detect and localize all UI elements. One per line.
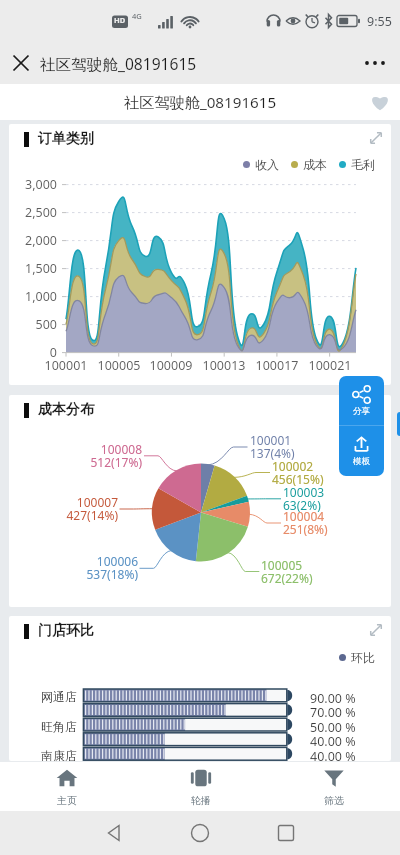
staticText: 门店环比: [38, 622, 94, 640]
staticText: 分享: [353, 406, 370, 417]
staticText: 成本: [303, 157, 327, 172]
button[interactable]: Expand: [364, 126, 388, 150]
staticText: 100005: [94, 357, 144, 374]
staticText: 3,000: [9, 176, 57, 193]
staticText: 成本分布: [38, 401, 94, 419]
button[interactable]: 轮播: [134, 762, 267, 811]
staticText: 网通店: [14, 689, 77, 704]
staticText: 9:55: [367, 13, 392, 30]
staticText: 1,500: [9, 260, 57, 277]
staticText: 毛利: [351, 157, 375, 172]
staticText: 100017: [252, 357, 302, 374]
button[interactable]: Close: [4, 46, 38, 80]
staticText: 100001: [41, 357, 91, 374]
staticText: 40.00 %: [310, 748, 356, 761]
staticText: 100007 427(14%): [28, 494, 118, 523]
staticText: 4G: [132, 11, 142, 21]
staticText: 旺角店: [14, 719, 77, 734]
staticText: 100002 456(15%): [272, 458, 362, 487]
staticText: 50.00 %: [310, 719, 356, 736]
staticText: 筛选: [324, 794, 344, 807]
staticText: 2,000: [9, 232, 57, 249]
staticText: 1,000: [9, 288, 57, 305]
staticText: 100021: [305, 357, 355, 374]
button[interactable]: Favorite: [369, 91, 391, 113]
staticText: 100001 137(4%): [250, 432, 340, 461]
staticText: 社区驾驶舱_08191615: [40, 53, 197, 74]
button[interactable]: 分享: [339, 376, 384, 425]
button[interactable]: Expand: [364, 618, 388, 642]
staticText: 2,500: [9, 204, 57, 221]
button[interactable]: Expand: [364, 397, 388, 421]
button[interactable]: 模板: [339, 426, 384, 476]
staticText: 100006 537(18%): [48, 553, 138, 582]
staticText: 社区驾驶舱_08191615: [124, 92, 277, 113]
staticText: 100013: [199, 357, 249, 374]
staticText: 订单类别: [38, 130, 94, 148]
button[interactable]: 筛选: [267, 762, 400, 811]
button[interactable]: Open panel: [397, 412, 400, 436]
button[interactable]: More options: [358, 46, 392, 80]
button[interactable]: 主页: [0, 762, 134, 811]
staticText: 轮播: [191, 794, 211, 807]
staticText: 100009: [146, 357, 196, 374]
staticText: 100003 63(2%): [283, 484, 373, 513]
staticText: 模板: [353, 456, 370, 467]
staticText: 40.00 %: [310, 733, 356, 750]
staticText: 环比: [351, 650, 375, 665]
staticText: 70.00 %: [310, 704, 356, 721]
staticText: 收入: [255, 157, 279, 172]
staticText: 100005 672(22%): [261, 557, 351, 586]
staticText: 100004 251(8%): [283, 508, 373, 537]
staticText: 90.00 %: [310, 690, 356, 707]
staticText: HD: [114, 15, 126, 25]
staticText: 500: [9, 316, 57, 333]
staticText: 主页: [57, 794, 77, 807]
staticText: 0: [9, 344, 57, 361]
staticText: 100008 512(17%): [52, 441, 142, 470]
staticText: 南康店: [14, 748, 77, 761]
